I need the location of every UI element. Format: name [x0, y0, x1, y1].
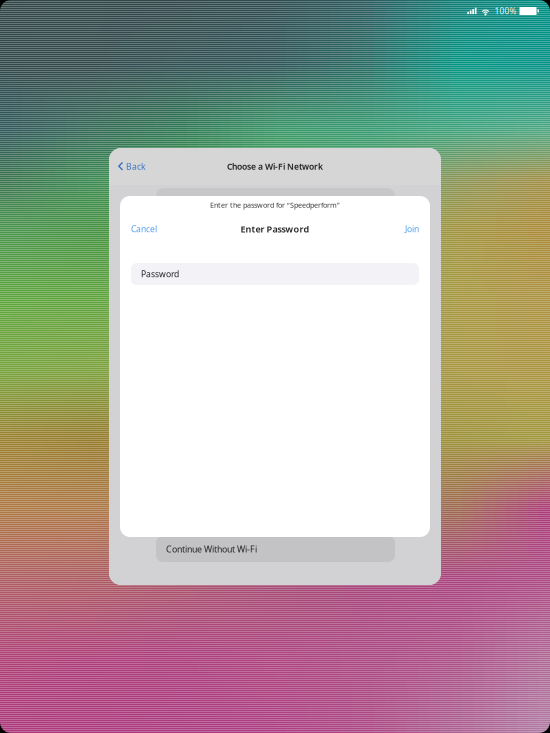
staticText: Enter Password	[240, 223, 309, 235]
staticText: 100%	[494, 5, 516, 17]
staticText: Enter the password for “Speedperform”	[210, 200, 340, 210]
button[interactable]: Continue Without Wi-Fi	[156, 536, 395, 562]
staticText: Continue Without Wi-Fi	[166, 543, 257, 555]
staticText: Back	[126, 161, 146, 172]
staticText: Cancel	[131, 223, 157, 235]
staticText: Join	[405, 223, 419, 235]
button[interactable]: Back	[109, 148, 152, 185]
staticText: Choose a Wi-Fi Network	[227, 161, 323, 172]
staticText: Password	[141, 268, 179, 280]
button[interactable]: Join	[397, 220, 430, 238]
button[interactable]: Cancel	[120, 220, 165, 238]
button[interactable]: Password	[131, 263, 419, 285]
